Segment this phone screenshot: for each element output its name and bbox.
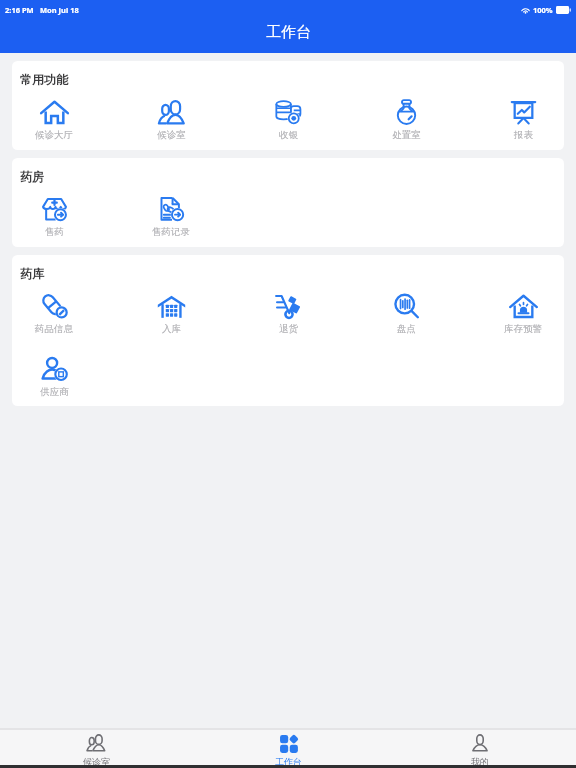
button[interactable]: 候诊大厅: [12, 97, 96, 141]
button[interactable]: 售药: [12, 194, 96, 238]
button[interactable]: 工作台: [192, 730, 384, 765]
staticText: 候诊室: [157, 129, 186, 141]
button[interactable]: 报表: [481, 97, 564, 141]
staticText: 供应商: [40, 386, 69, 398]
button[interactable]: 我的: [384, 730, 576, 765]
button[interactable]: 库存预警: [481, 291, 564, 335]
button[interactable]: 药品信息: [12, 291, 96, 335]
staticText: 售药: [45, 226, 64, 238]
button[interactable]: 候诊室: [0, 730, 192, 765]
button[interactable]: 盘点: [364, 291, 448, 335]
staticText: 售药记录: [152, 226, 190, 238]
staticText: 工作台: [275, 756, 302, 765]
staticText: 退货: [279, 323, 298, 335]
staticText: 入库: [162, 323, 181, 335]
button[interactable]: 入库: [129, 291, 213, 335]
staticText: Mon Jul 18: [40, 5, 79, 15]
staticText: 工作台: [266, 23, 311, 42]
staticText: 候诊室: [83, 756, 110, 765]
button[interactable]: 收银: [246, 97, 330, 141]
staticText: 药库: [20, 266, 44, 281]
staticText: 收银: [279, 129, 298, 141]
staticText: 库存预警: [504, 323, 542, 335]
staticText: 药品信息: [35, 323, 73, 335]
staticText: 2:16 PM: [5, 5, 34, 15]
staticText: 常用功能: [20, 72, 68, 87]
button[interactable]: 处置室: [364, 97, 448, 141]
button[interactable]: 供应商: [12, 354, 96, 398]
staticText: 报表: [514, 129, 533, 141]
button[interactable]: 退货: [246, 291, 330, 335]
staticText: 我的: [471, 756, 489, 765]
staticText: 药房: [20, 169, 44, 184]
staticText: 盘点: [397, 323, 416, 335]
staticText: 处置室: [392, 129, 421, 141]
staticText: 100%: [533, 5, 553, 15]
button[interactable]: 候诊室: [129, 97, 213, 141]
staticText: 候诊大厅: [35, 129, 73, 141]
button[interactable]: 售药记录: [129, 194, 213, 238]
